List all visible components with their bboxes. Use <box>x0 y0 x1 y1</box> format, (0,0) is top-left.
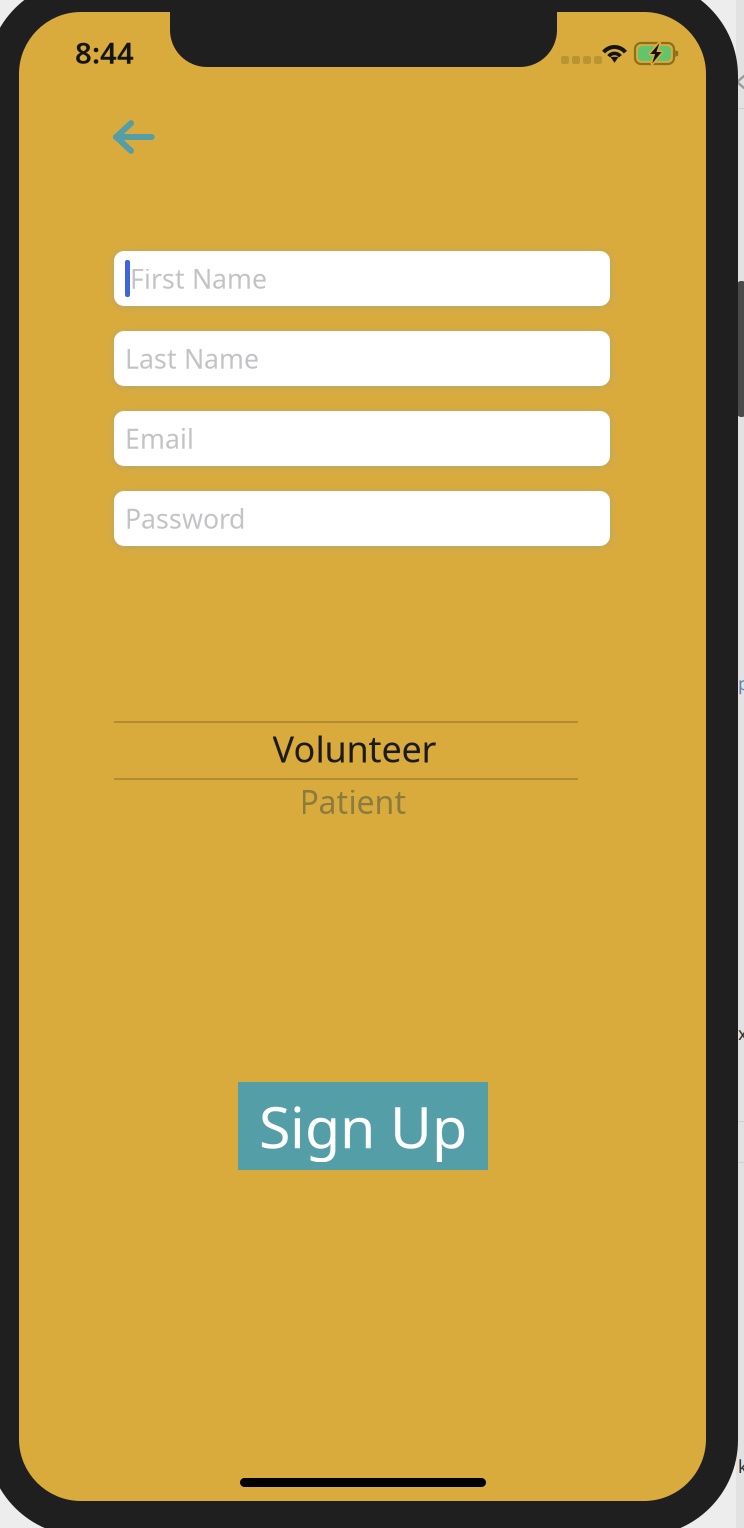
button[interactable]: Sign Up <box>238 1082 488 1170</box>
staticText: Password <box>125 501 245 536</box>
staticText: p <box>738 672 744 695</box>
staticText: x <box>738 1022 744 1045</box>
staticText: Patient <box>299 780 406 823</box>
staticText: Email <box>125 421 194 456</box>
staticText: 8:44 <box>75 33 134 72</box>
staticText: k <box>738 1455 744 1478</box>
staticText: First Name <box>130 261 267 296</box>
staticText: Last Name <box>125 341 259 376</box>
staticText: Sign Up <box>259 1088 467 1164</box>
staticText: Volunteer <box>272 725 436 772</box>
button[interactable]: Back <box>102 104 168 170</box>
